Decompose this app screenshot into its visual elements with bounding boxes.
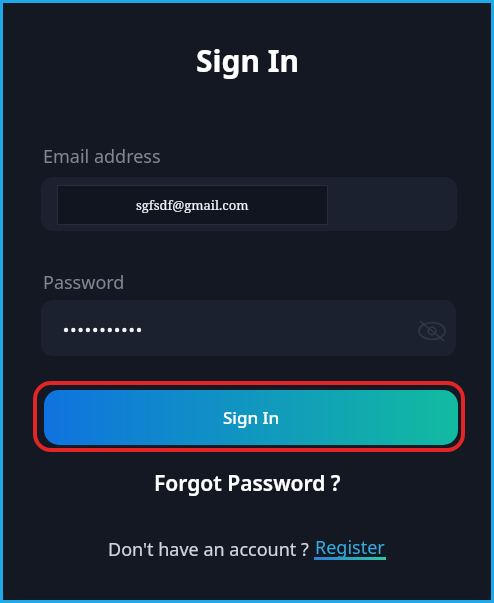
staticText: Don't have an account ? bbox=[108, 537, 314, 562]
button[interactable] bbox=[41, 300, 456, 356]
staticText: Sign In bbox=[196, 40, 299, 81]
staticText: Register bbox=[315, 535, 385, 560]
button[interactable]: Register bbox=[314, 535, 386, 563]
staticText: Password bbox=[43, 270, 125, 295]
staticText: Forgot Password ? bbox=[154, 469, 341, 498]
button[interactable]: Forgot Password ? bbox=[3, 467, 491, 499]
button[interactable]: Sign In bbox=[44, 390, 458, 445]
staticText: sgfsdf@gmail.com bbox=[136, 196, 249, 214]
staticText: Sign In bbox=[223, 406, 280, 429]
button[interactable]: sgfsdf@gmail.com bbox=[41, 177, 457, 231]
staticText: Email address bbox=[43, 144, 161, 169]
